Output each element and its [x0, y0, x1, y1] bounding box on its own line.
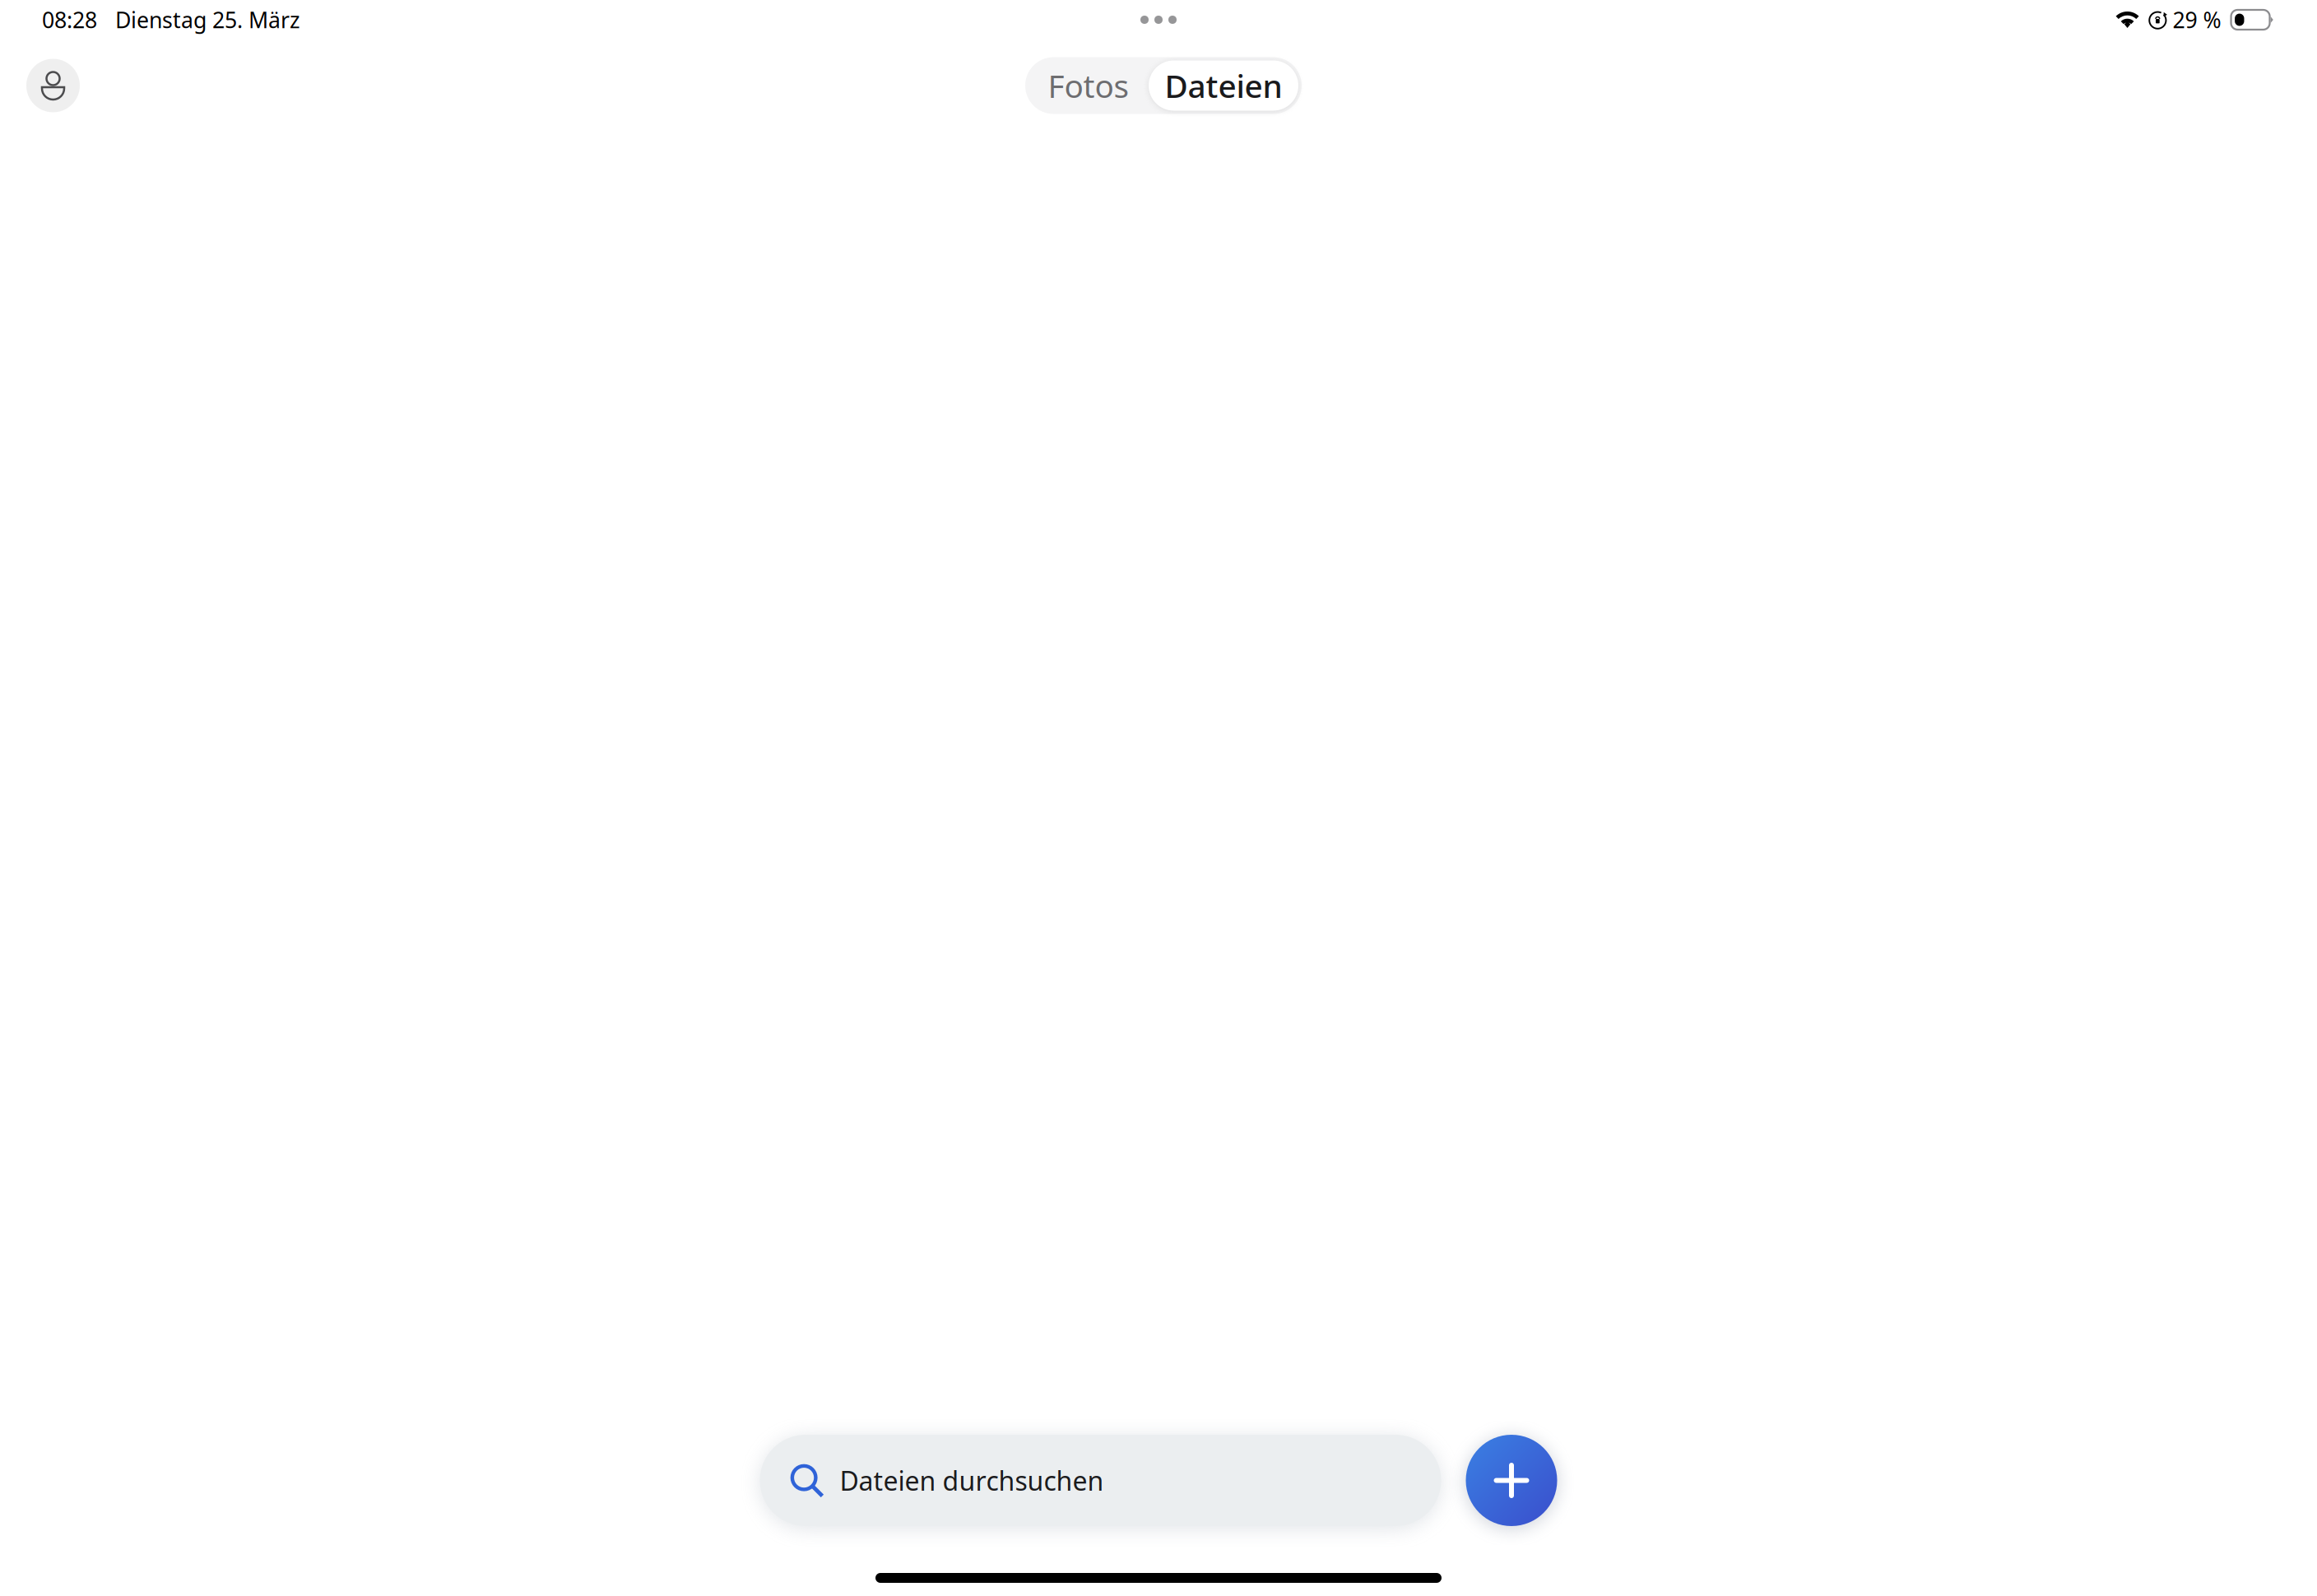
staticText: Dienstag 25. März: [115, 5, 300, 34]
staticText: Fotos: [1048, 64, 1129, 107]
staticText: Dateien: [1165, 64, 1282, 107]
button[interactable]: Dateien durchsuchen: [760, 1435, 1441, 1526]
button[interactable]: Dateien: [1149, 60, 1298, 111]
staticText: Dateien durchsuchen: [840, 1463, 1104, 1498]
button[interactable]: Multitasking: [1126, 6, 1191, 34]
staticText: 08:28: [42, 5, 97, 34]
button[interactable]: Fotos: [1028, 60, 1149, 111]
staticText: 29 %: [2173, 5, 2221, 34]
button[interactable]: Hinzufügen: [1466, 1435, 1557, 1526]
button[interactable]: Account: [26, 59, 80, 112]
